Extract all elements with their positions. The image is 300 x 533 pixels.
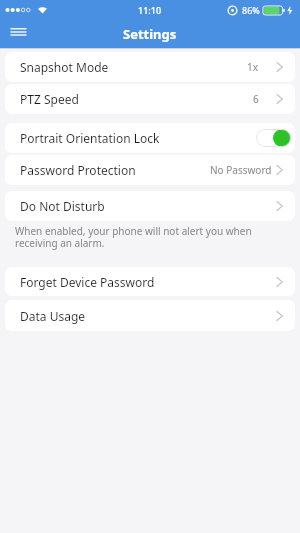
button[interactable]: PTZ Speed [5,84,295,114]
staticText: Settings [123,25,177,43]
button[interactable] [256,129,291,147]
button[interactable]: Forget Device Password [5,267,295,296]
button[interactable]: Snapshot Mode [5,52,295,82]
staticText: Forget Device Password [20,274,155,290]
staticText: PTZ Speed [20,91,79,107]
staticText: Do Not Disturb [20,198,105,214]
button[interactable]: Data Usage [5,300,295,331]
staticText: 1x [247,60,259,74]
button[interactable] [6,22,30,46]
staticText: Data Usage [20,308,86,324]
button[interactable]: Password Protection [5,155,295,185]
staticText: When enabled, your phone will not alert … [15,224,252,250]
staticText: Portrait Orientation Lock [20,130,160,146]
staticText: No Password [210,163,272,177]
button[interactable]: Portrait Orientation Lock [5,123,295,153]
staticText: 11:10 [138,4,162,16]
button[interactable]: Do Not Disturb [5,191,295,221]
staticText: 86% [242,4,260,16]
staticText: 6 [253,92,259,106]
staticText: Password Protection [20,162,136,178]
staticText: Snapshot Mode [20,59,109,75]
